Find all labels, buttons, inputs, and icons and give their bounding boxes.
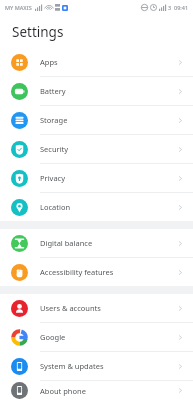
staticText: Users & accounts <box>40 303 177 313</box>
button[interactable]: Location <box>0 193 193 221</box>
button[interactable]: System & updates <box>0 352 193 381</box>
staticText: Privacy <box>40 173 177 183</box>
staticText: Settings <box>12 23 64 41</box>
button[interactable]: Digital balance <box>0 229 193 258</box>
staticText: Accessibility features <box>40 267 177 277</box>
button[interactable]: Storage <box>0 106 193 135</box>
button[interactable]: Accessibility features <box>0 258 193 286</box>
staticText: Location <box>40 202 177 212</box>
staticText: Apps <box>40 57 177 67</box>
button[interactable]: Battery <box>0 77 193 106</box>
staticText: Digital balance <box>40 238 177 248</box>
button[interactable]: Google <box>0 323 193 352</box>
button[interactable]: Security <box>0 135 193 164</box>
staticText: Security <box>40 144 177 154</box>
staticText: MY MAXIS <box>5 4 32 11</box>
staticText: 3 <box>168 4 172 11</box>
staticText: System & updates <box>40 361 177 371</box>
button[interactable]: Privacy <box>0 164 193 193</box>
button[interactable]: Users & accounts <box>0 294 193 323</box>
button[interactable]: Apps <box>0 48 193 77</box>
staticText: Battery <box>40 86 177 96</box>
button[interactable]: About phone <box>0 381 193 400</box>
staticText: About phone <box>40 386 177 396</box>
staticText: Google <box>40 332 177 342</box>
staticText: 09:41 <box>174 4 189 11</box>
staticText: Storage <box>40 115 177 125</box>
